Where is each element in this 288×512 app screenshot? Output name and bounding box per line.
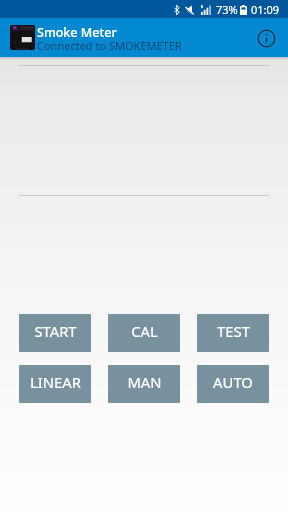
button[interactable]: MAN xyxy=(108,365,180,403)
button[interactable]: TEST xyxy=(197,314,269,352)
staticText: Smoke Meter xyxy=(37,24,117,41)
staticText: Connected to SMOKEMETER xyxy=(37,38,182,53)
staticText: TEST xyxy=(217,321,250,341)
staticText: 01:09 xyxy=(251,2,280,17)
button[interactable]: CAL xyxy=(108,314,180,352)
button[interactable]: LINEAR xyxy=(19,365,91,403)
button[interactable]: START xyxy=(19,314,91,352)
button[interactable]: Info xyxy=(250,22,282,54)
staticText: START xyxy=(34,321,77,341)
staticText: LINEAR xyxy=(30,372,81,392)
staticText: CAL xyxy=(131,321,158,341)
staticText: AUTO xyxy=(213,372,253,392)
staticText: MAN xyxy=(127,372,162,392)
button[interactable]: AUTO xyxy=(197,365,269,403)
staticText: 73% xyxy=(216,2,238,17)
